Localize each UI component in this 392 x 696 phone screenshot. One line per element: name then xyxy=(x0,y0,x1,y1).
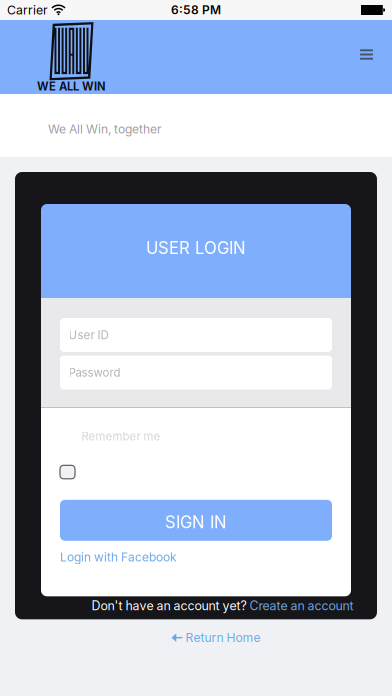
staticText: SIGN IN xyxy=(165,512,227,532)
button[interactable]: User ID xyxy=(60,318,332,352)
button[interactable]: Login with Facebook xyxy=(60,550,177,564)
staticText: Login with Facebook xyxy=(60,550,177,564)
button[interactable]: SIGN IN xyxy=(60,500,332,541)
staticText: Don't have an account yet? xyxy=(91,598,249,613)
staticText: Remember me xyxy=(81,430,160,443)
button[interactable]: Create an account xyxy=(249,598,353,613)
staticText: USER LOGIN xyxy=(146,238,246,258)
button[interactable]: Return Home xyxy=(161,625,270,650)
staticText: Password xyxy=(68,366,120,380)
staticText: Create an account xyxy=(249,598,353,613)
button[interactable]: Open menu xyxy=(347,35,385,73)
staticText: User ID xyxy=(68,328,108,342)
button[interactable]: Remember me xyxy=(60,465,75,479)
staticText: Return Home xyxy=(185,630,260,645)
staticText: 6:58 PM xyxy=(171,3,221,17)
button[interactable]: Password xyxy=(60,356,332,390)
staticText: We All Win, together xyxy=(48,122,162,136)
staticText: WE ALL WIN xyxy=(37,80,106,93)
staticText: Carrier xyxy=(7,3,48,17)
